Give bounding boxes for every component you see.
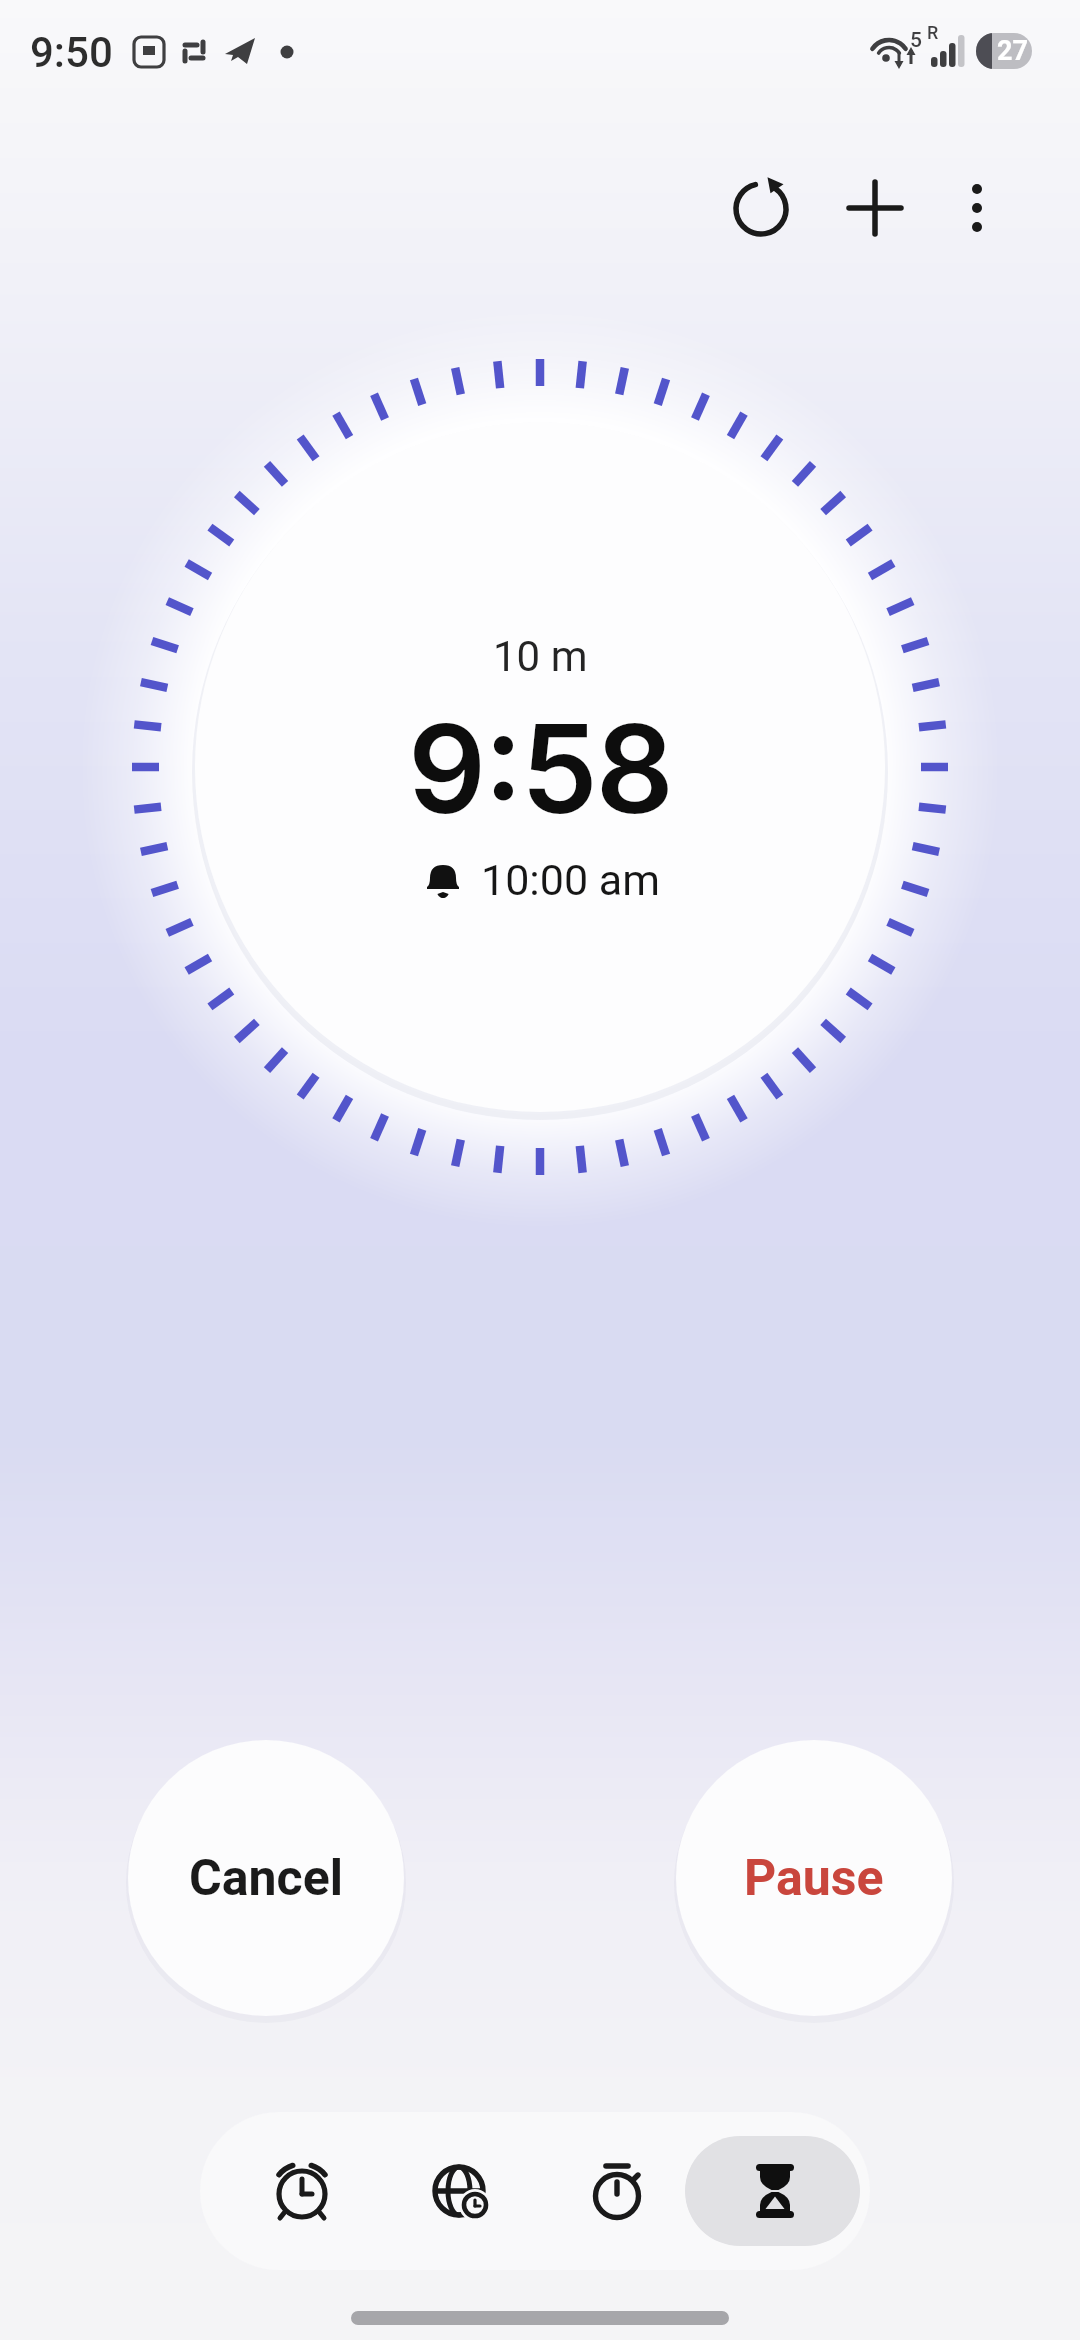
button[interactable] bbox=[398, 2112, 522, 2270]
button[interactable] bbox=[835, 168, 915, 248]
staticText: Pause bbox=[744, 1849, 884, 1908]
staticText: 27 bbox=[997, 35, 1028, 67]
staticText: R bbox=[927, 22, 939, 42]
staticText: 10 m bbox=[493, 632, 588, 681]
button[interactable] bbox=[555, 2112, 679, 2270]
button[interactable] bbox=[713, 2112, 837, 2270]
staticText: 5 bbox=[910, 28, 922, 50]
button[interactable] bbox=[240, 2112, 364, 2270]
button[interactable]: Cancel bbox=[128, 1740, 404, 2016]
staticText: Cancel bbox=[189, 1849, 343, 1908]
staticText: 9:50 bbox=[30, 28, 113, 77]
button[interactable] bbox=[721, 168, 801, 248]
button[interactable]: Pause bbox=[676, 1740, 952, 2016]
staticText: 10:00 am bbox=[481, 855, 660, 905]
staticText: 9:58 bbox=[408, 695, 672, 843]
button[interactable] bbox=[947, 168, 1007, 248]
